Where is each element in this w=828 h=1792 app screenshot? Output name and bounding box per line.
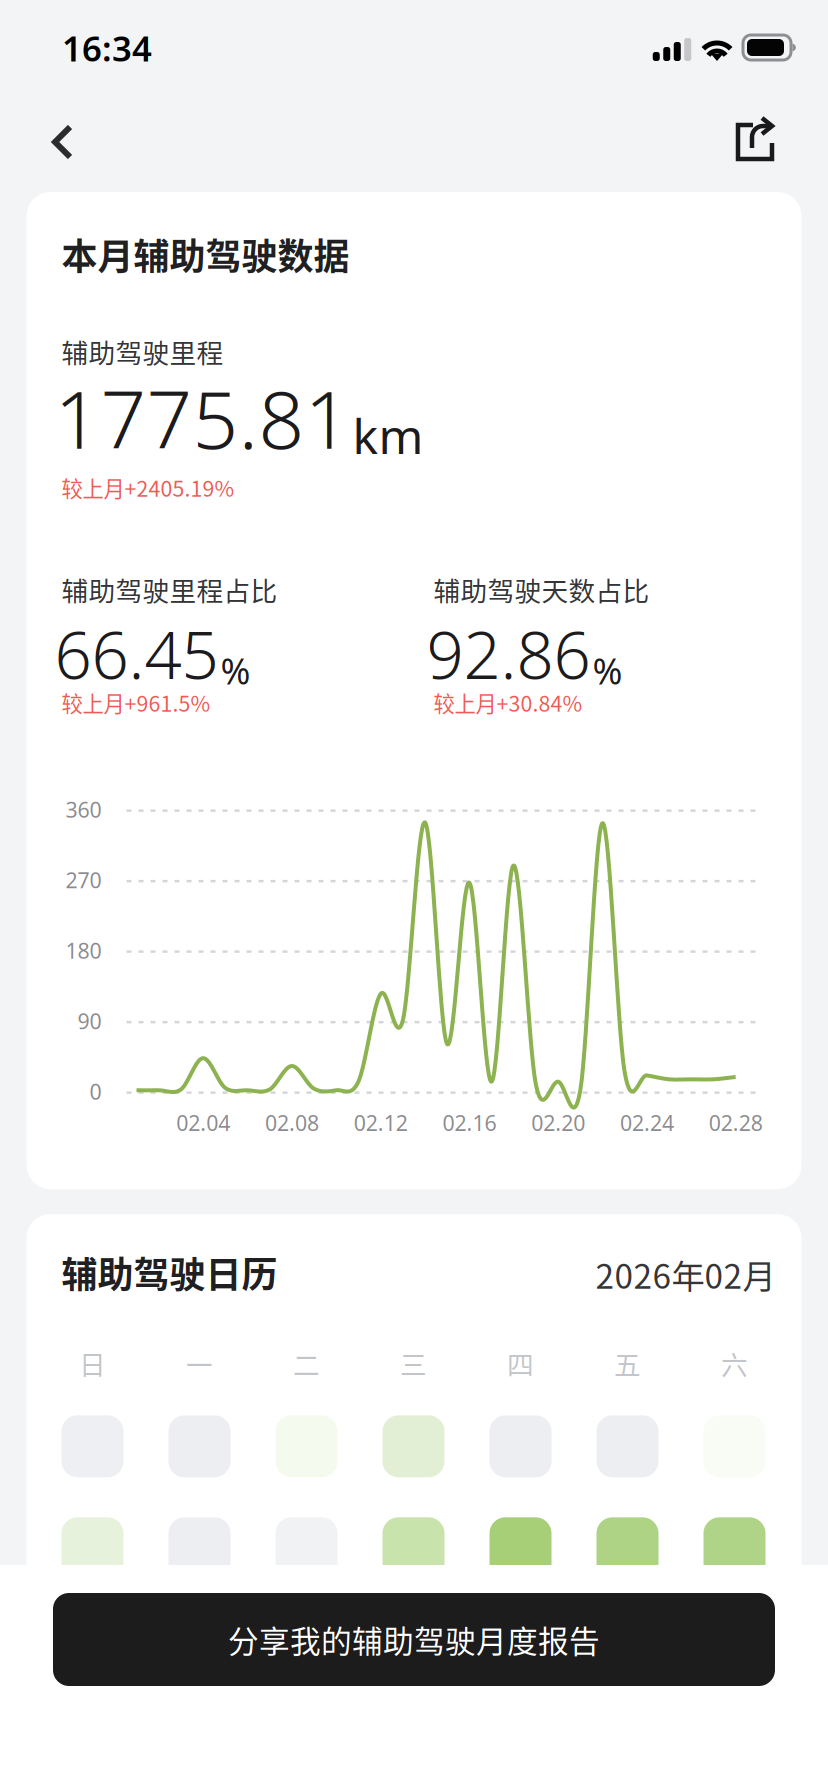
staticText: 360	[65, 795, 101, 824]
button[interactable]: Share	[729, 118, 781, 170]
staticText: 92.86	[426, 609, 590, 698]
button[interactable]: 分享我的辅助驾驶月度报告	[53, 1593, 775, 1686]
staticText: 辅助驾驶里程占比	[61, 570, 277, 609]
staticText: 66.45	[54, 609, 218, 698]
staticText: 02.20	[531, 1108, 585, 1137]
staticText: 02.12	[354, 1108, 408, 1137]
staticText: 180	[65, 936, 101, 965]
staticText: 较上月+2405.19%	[61, 472, 234, 503]
staticText: 二	[293, 1344, 320, 1383]
staticText: 270	[65, 865, 101, 894]
staticText: 三	[400, 1344, 427, 1383]
staticText: 02.28	[709, 1108, 763, 1137]
staticText: 02.08	[265, 1108, 319, 1137]
staticText: 辅助驾驶日历	[61, 1246, 277, 1298]
staticText: 六	[721, 1344, 748, 1383]
staticText: 四	[507, 1344, 534, 1383]
staticText: 一	[186, 1344, 213, 1383]
staticText: km	[352, 403, 423, 468]
staticText: 日	[79, 1344, 106, 1383]
staticText: 02.24	[620, 1108, 674, 1137]
staticText: 0	[89, 1077, 101, 1106]
staticText: 1775.81	[54, 363, 350, 472]
staticText: 辅助驾驶天数占比	[433, 570, 649, 609]
staticText: 02.04	[176, 1108, 230, 1137]
staticText: %	[592, 646, 622, 695]
staticText: 02.16	[442, 1108, 496, 1137]
staticText: %	[220, 646, 250, 695]
staticText: 90	[77, 1006, 101, 1035]
staticText: 本月辅助驾驶数据	[61, 228, 349, 280]
staticText: 五	[614, 1344, 641, 1383]
button[interactable]: Back	[41, 118, 93, 170]
staticText: 辅助驾驶里程	[61, 332, 223, 371]
staticText: 16:34	[62, 24, 152, 72]
staticText: 较上月+30.84%	[433, 687, 582, 718]
staticText: 较上月+961.5%	[61, 687, 210, 718]
staticText: 2026年02月	[595, 1250, 775, 1298]
staticText: 分享我的辅助驾驶月度报告	[228, 1617, 600, 1662]
